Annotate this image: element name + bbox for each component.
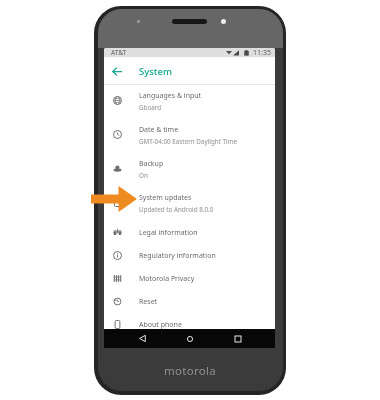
staticText: System — [139, 65, 172, 78]
staticText: On — [139, 171, 148, 180]
button[interactable]: Back — [133, 329, 152, 348]
staticText: Gboard — [139, 103, 162, 112]
staticText: motorola — [164, 363, 217, 379]
button[interactable]: Recents — [228, 329, 247, 348]
staticText: System updates — [139, 193, 192, 203]
button[interactable]: Regulatory information — [104, 244, 275, 267]
button[interactable]: About phone — [104, 313, 275, 336]
staticText: Updated to Android 8.0.0 — [139, 205, 214, 214]
staticText: Date & time — [139, 125, 179, 135]
staticText: Backup — [139, 159, 164, 169]
button[interactable]: Home — [180, 329, 199, 348]
button[interactable]: System updates — [104, 187, 275, 221]
button[interactable]: Motorola Privacy — [104, 267, 275, 290]
button[interactable]: Backup — [104, 153, 275, 187]
staticText: AT&T — [111, 48, 127, 57]
staticText: 11:35 — [253, 48, 271, 57]
staticText: Reset — [139, 297, 158, 307]
button[interactable]: Legal information — [104, 221, 275, 244]
staticText: GMT-04:00 Eastern Daylight Time — [139, 137, 238, 146]
button[interactable]: Reset — [104, 290, 275, 313]
staticText: Regulatory information — [139, 251, 216, 261]
button[interactable]: Date & time — [104, 119, 275, 153]
staticText: Languages & input — [139, 91, 202, 101]
button[interactable]: Back — [104, 57, 130, 85]
staticText: About phone — [139, 320, 182, 330]
button[interactable]: Languages & input — [104, 85, 275, 119]
staticText: Legal information — [139, 228, 198, 238]
staticText: Motorola Privacy — [139, 274, 195, 284]
